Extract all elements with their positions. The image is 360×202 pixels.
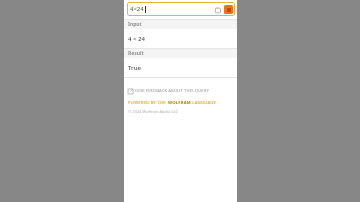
- staticText: WOLFRAM: [168, 100, 191, 106]
- staticText: POWERED BY THE: [128, 100, 168, 106]
- button[interactable]: Input: [124, 19, 237, 29]
- button[interactable]: 4 < 24: [124, 29, 237, 48]
- button[interactable]: Result: [124, 48, 237, 58]
- staticText: Input: [128, 21, 142, 28]
- button[interactable]: GIVE FEEDBACK ABOUT THIS QUERY: [128, 88, 209, 94]
- button[interactable]: 4<24: [127, 2, 235, 16]
- staticText: LANGUAGE: [191, 100, 216, 106]
- button[interactable]: POWERED BY THE: [128, 100, 216, 106]
- staticText: True: [128, 64, 142, 72]
- staticText: GIVE FEEDBACK ABOUT THIS QUERY: [135, 88, 209, 94]
- staticText: 4 < 24: [128, 35, 145, 43]
- staticText: © 2024 Wolfram Alpha LLC: [128, 109, 179, 114]
- staticText: Result: [128, 50, 144, 57]
- button[interactable]: True: [124, 58, 237, 77]
- button[interactable]: Extended keyboard: [212, 4, 223, 15]
- button[interactable]: Compute: [224, 5, 233, 14]
- staticText: 4<24: [130, 5, 144, 13]
